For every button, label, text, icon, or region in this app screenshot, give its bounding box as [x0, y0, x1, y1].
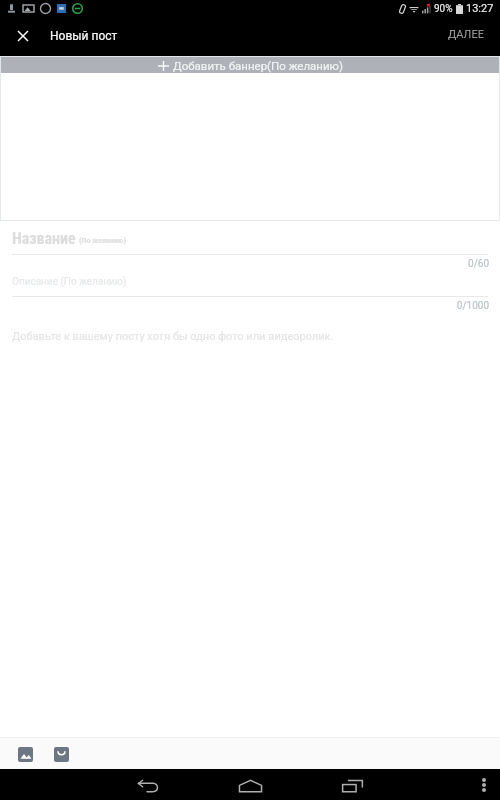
button[interactable]: Add product — [50, 743, 72, 765]
staticText: Новый пост — [50, 29, 118, 43]
staticText: 90% — [434, 3, 453, 15]
staticText: 13:27 — [466, 2, 494, 15]
staticText: 0/60 — [0, 258, 489, 270]
button[interactable]: Close — [10, 23, 34, 47]
staticText: (По желанию) — [79, 236, 127, 245]
button[interactable]: Добавить баннер(По желанию) — [1, 57, 500, 73]
staticText: Добавить баннер(По желанию) — [173, 59, 344, 72]
staticText: 0/1000 — [0, 300, 489, 312]
staticText: ДАЛЕЕ — [448, 28, 484, 41]
button[interactable]: Recents — [336, 770, 369, 800]
button[interactable]: ДАЛЕЕ — [432, 23, 500, 48]
staticText: Название — [12, 229, 76, 248]
staticText: Добавьте к вашему посту хотя бы одно фот… — [12, 330, 334, 343]
button[interactable]: Add photo — [14, 743, 36, 765]
button[interactable]: Home — [234, 770, 267, 800]
staticText: Описание (По желанию) — [12, 276, 127, 288]
button[interactable]: More options — [474, 775, 494, 795]
button[interactable]: Back — [132, 770, 165, 800]
